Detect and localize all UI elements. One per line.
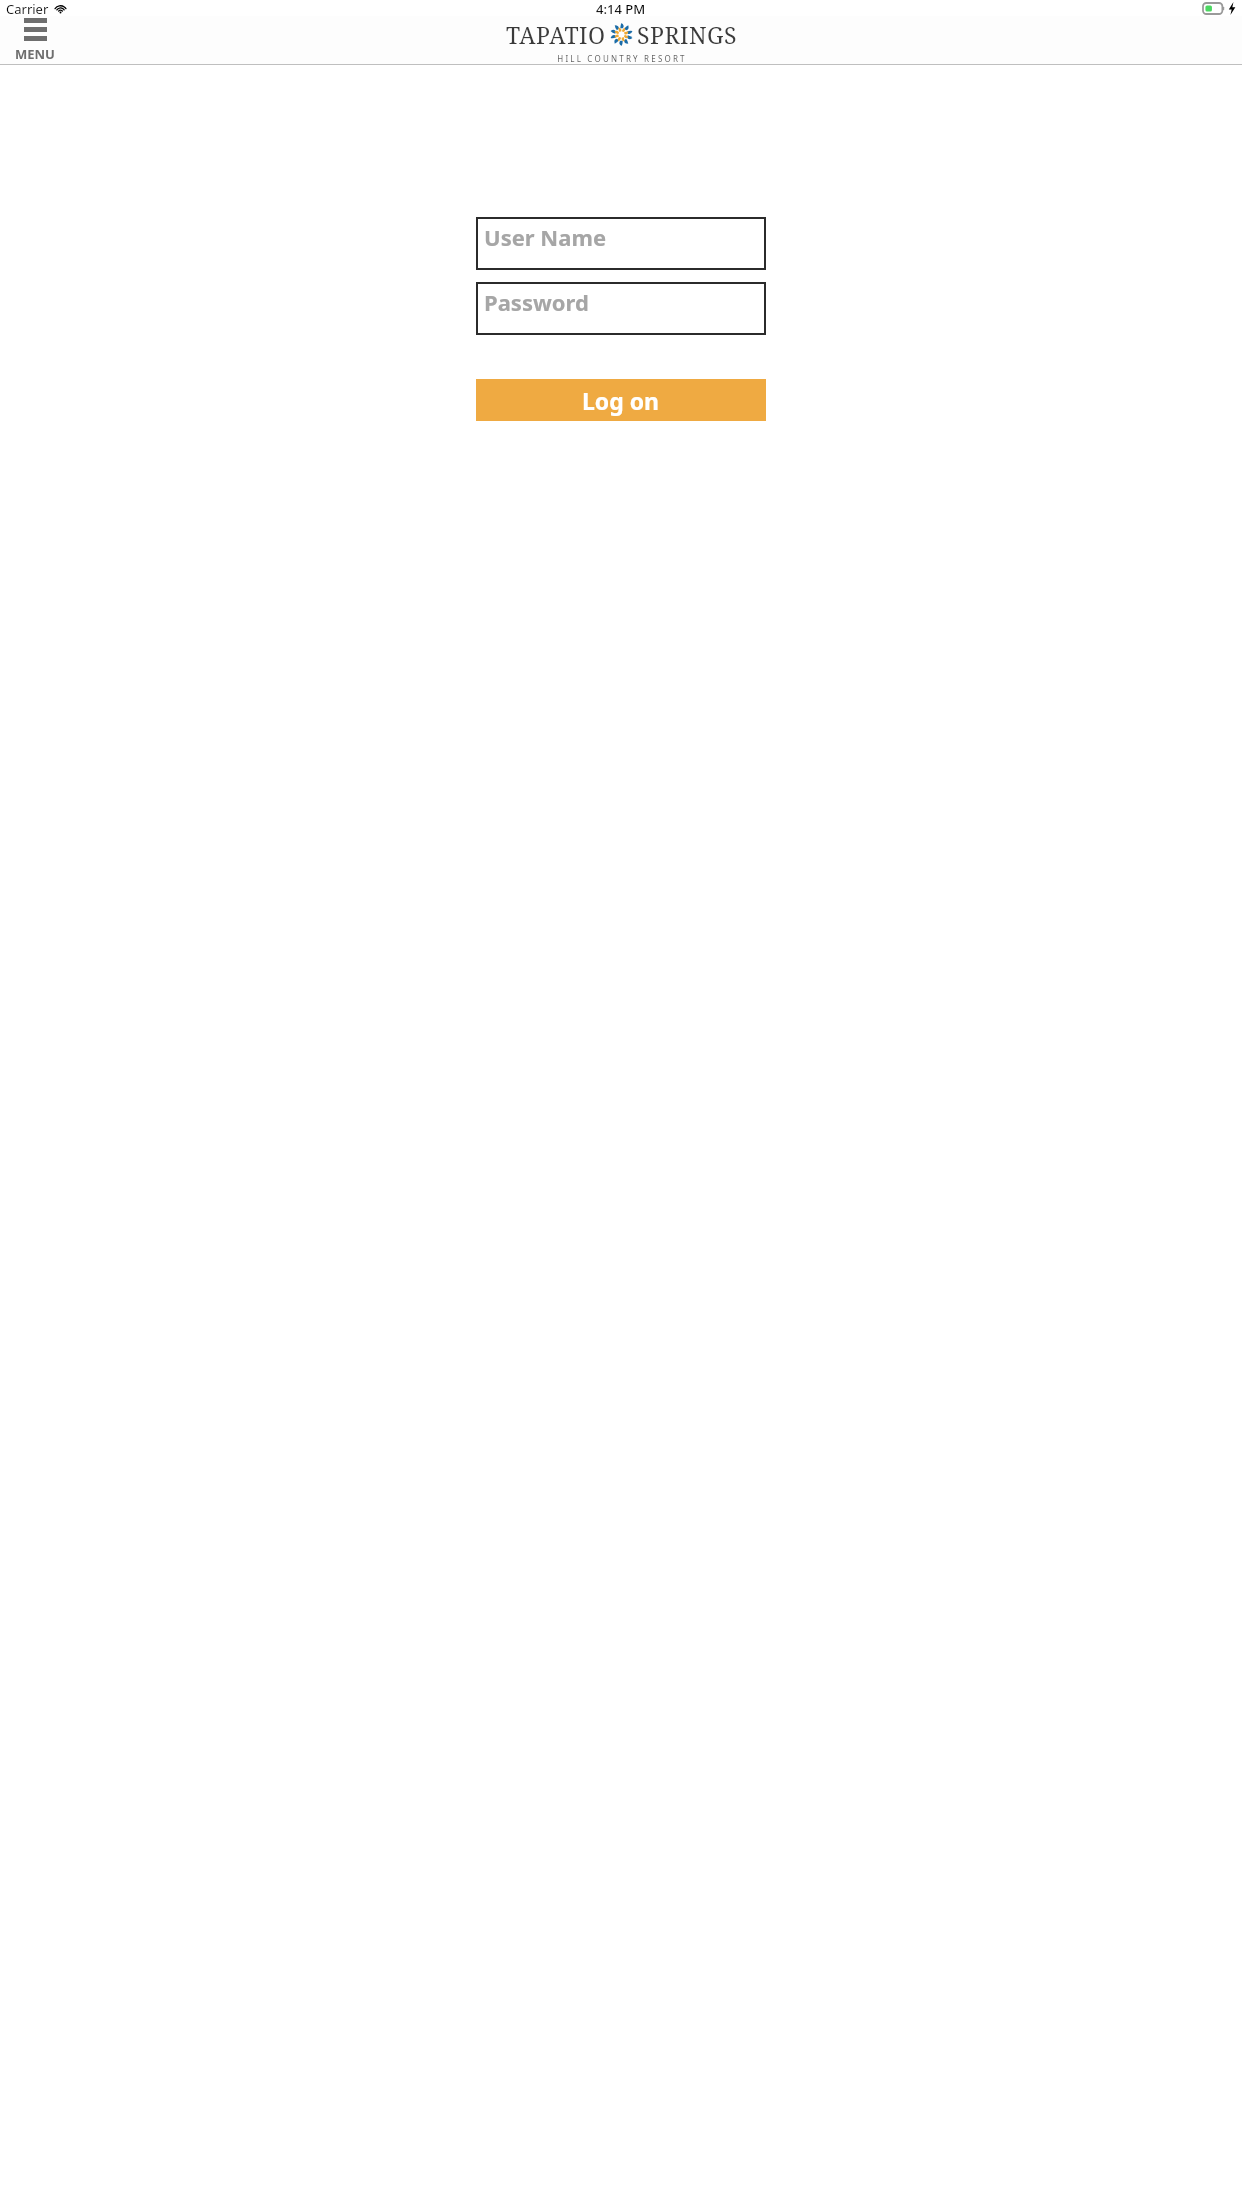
button[interactable]: Log on <box>476 379 766 421</box>
staticText: MENU <box>15 45 55 62</box>
staticText: SPRINGS <box>637 19 737 50</box>
staticText: HILL COUNTRY RESORT <box>557 53 687 64</box>
staticText: Carrier <box>6 0 49 16</box>
button[interactable]: Menu <box>13 16 57 64</box>
button[interactable]: User Name <box>476 217 766 270</box>
staticText: Password <box>484 287 589 317</box>
staticText: TAPATIO <box>506 19 606 50</box>
staticText: Log on <box>582 385 660 416</box>
button[interactable]: Password <box>476 282 766 335</box>
staticText: User Name <box>484 222 607 252</box>
staticText: 4:14 PM <box>596 0 646 16</box>
